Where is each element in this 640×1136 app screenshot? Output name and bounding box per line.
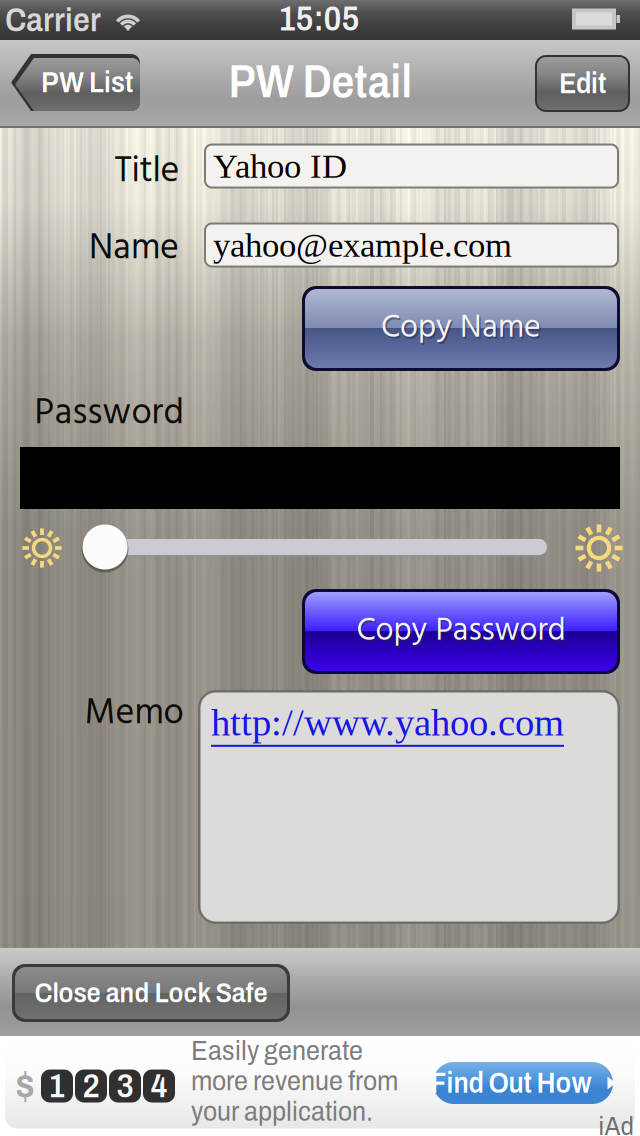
staticText: Memo <box>84 685 183 743</box>
staticText: more revenue from <box>191 1066 398 1096</box>
staticText: Password <box>34 385 183 443</box>
staticText: Find Out How <box>430 1067 591 1099</box>
staticText: Carrier <box>5 2 101 38</box>
staticText: Edit <box>559 67 606 99</box>
staticText: $ <box>15 1065 34 1109</box>
staticText: yahoo@example.com <box>213 226 512 264</box>
staticText: Close and Lock Safe <box>34 978 267 1008</box>
staticText: 4 <box>150 1068 167 1104</box>
staticText: your application. <box>191 1096 373 1127</box>
button[interactable]: Copy Password <box>302 589 620 674</box>
staticText: PW List <box>41 66 133 98</box>
staticText: 15:05 <box>278 0 359 38</box>
staticText: 3 <box>116 1068 133 1104</box>
staticText: http://www.yahoo.com <box>211 701 564 744</box>
button[interactable]: $ <box>0 1036 640 1136</box>
staticText: Name <box>89 220 179 278</box>
staticText: 2 <box>82 1068 99 1104</box>
staticText: Yahoo ID <box>213 147 347 185</box>
button[interactable]: Edit <box>535 55 630 112</box>
staticText: Copy Password <box>358 608 567 659</box>
staticText: Copy Password <box>356 606 565 657</box>
staticText: Copy Name <box>381 303 541 354</box>
staticText: Title <box>114 143 179 201</box>
staticText: PW Detail <box>228 57 411 107</box>
staticText: 1 <box>48 1068 65 1104</box>
staticText: Copy Name <box>382 305 542 356</box>
button[interactable]: Close and Lock Safe <box>12 964 290 1022</box>
button[interactable]: PW List <box>10 54 140 111</box>
button[interactable]: Copy Name <box>302 286 620 371</box>
staticText: Easily generate <box>191 1035 363 1066</box>
staticText: iAd <box>598 1111 633 1136</box>
